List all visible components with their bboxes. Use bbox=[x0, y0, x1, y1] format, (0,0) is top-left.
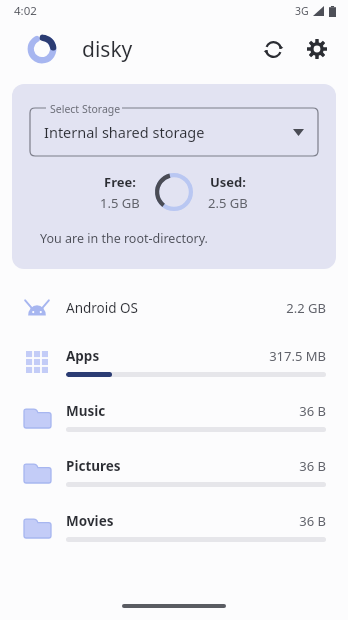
button[interactable]: Music bbox=[0, 400, 348, 434]
staticText: 1.5 GB bbox=[100, 194, 140, 212]
staticText: Free: bbox=[104, 173, 136, 191]
staticText: You are in the root-directory. bbox=[40, 230, 208, 247]
staticText: disky bbox=[82, 35, 133, 64]
staticText: 2.2 GB bbox=[286, 299, 326, 317]
staticText: 36 B bbox=[299, 457, 326, 475]
staticText: Android OS bbox=[66, 299, 138, 317]
staticText: 36 B bbox=[299, 512, 326, 530]
staticText: 3G bbox=[295, 4, 309, 18]
staticText: 317.5 MB bbox=[269, 347, 326, 365]
staticText: Apps bbox=[66, 347, 100, 365]
staticText: Music bbox=[66, 402, 106, 420]
button[interactable]: Select Storage bbox=[30, 108, 318, 156]
button[interactable]: Android OS bbox=[0, 291, 348, 325]
staticText: 36 B bbox=[299, 402, 326, 420]
staticText: 4:02 bbox=[14, 3, 37, 19]
staticText: Internal shared storage bbox=[44, 122, 205, 142]
staticText: Movies bbox=[66, 512, 114, 530]
button[interactable]: Apps bbox=[0, 345, 348, 379]
staticText: Pictures bbox=[66, 457, 121, 475]
button[interactable]: Refresh bbox=[254, 30, 292, 68]
staticText: Select Storage bbox=[50, 102, 121, 116]
staticText: 2.5 GB bbox=[208, 194, 248, 212]
button[interactable]: Movies bbox=[0, 510, 348, 544]
staticText: Used: bbox=[210, 173, 246, 191]
button[interactable]: Pictures bbox=[0, 455, 348, 489]
button[interactable]: Settings bbox=[298, 30, 336, 68]
